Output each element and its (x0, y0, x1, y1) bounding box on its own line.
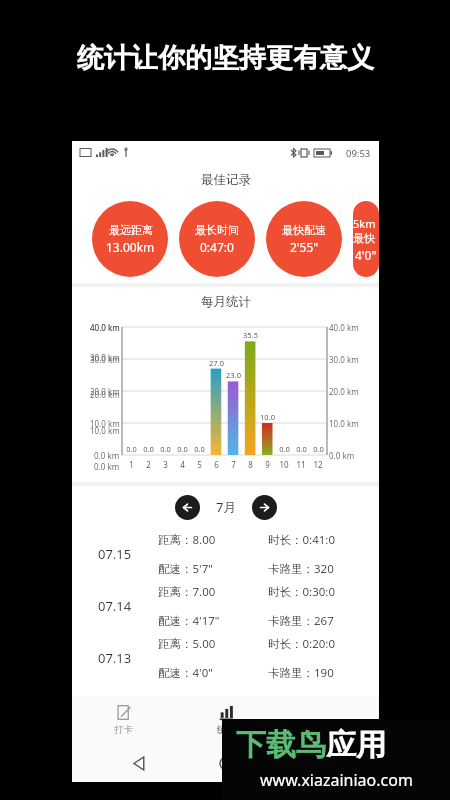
staticText: 10.0 (260, 412, 275, 422)
staticText: 0:47:0 (200, 239, 234, 255)
staticText: 7 (231, 459, 236, 470)
staticText: 10.0 km (90, 425, 120, 436)
staticText: 4'0" (355, 247, 377, 263)
staticText: 10.0 km (329, 418, 359, 429)
staticText: 配速：4'0" (158, 665, 213, 681)
staticText: 20.0 km (90, 389, 120, 400)
staticText: 0.0 (194, 444, 205, 454)
staticText: 距离：5.00 (158, 636, 216, 652)
staticText: 30.0 km (90, 354, 120, 365)
staticText: 10.0 km (90, 418, 120, 429)
staticText: 8 (248, 459, 253, 470)
staticText: 0.0 (143, 444, 154, 454)
button[interactable]: Recents (294, 746, 328, 780)
staticText: 27.0 (209, 358, 224, 368)
staticText: 20.0 km (90, 386, 120, 397)
staticText: 时长：0:30:0 (268, 584, 335, 600)
staticText: 每月统计 (201, 294, 251, 310)
staticText: 距离：8.00 (158, 532, 216, 548)
staticText: 1 (129, 459, 134, 470)
staticText: 30.0 km (329, 354, 359, 365)
staticText: 0.0 (126, 444, 137, 454)
staticText: 最快配速 (282, 223, 326, 237)
staticText: 最远距离 (109, 223, 153, 237)
staticText: 统计 (217, 724, 236, 736)
staticText: 12 (313, 459, 323, 470)
staticText: 下载鸟 (236, 726, 326, 764)
staticText: 11 (296, 459, 306, 470)
staticText: 7月 (216, 498, 237, 516)
button[interactable]: 打卡 (72, 696, 175, 744)
staticText: 卡路里：267 (268, 613, 334, 629)
staticText: 30.0 km (90, 352, 120, 363)
staticText: 4 (180, 459, 185, 470)
staticText: www.xiazainiao.com (260, 769, 413, 791)
staticText: 35.5 (243, 330, 258, 340)
button[interactable]: 07.15 (72, 528, 379, 580)
staticText: 0.0 (279, 444, 290, 454)
staticText: 配速：4'17" (158, 613, 220, 629)
button[interactable]: Back (123, 746, 157, 780)
staticText: 0.0 (296, 444, 307, 454)
staticText: 07.14 (98, 597, 132, 615)
staticText: 最佳记录 (201, 172, 251, 188)
staticText: 2 (146, 459, 151, 470)
button[interactable]: Previous month (175, 495, 200, 520)
button[interactable]: 统计 (175, 696, 277, 744)
staticText: 0.0 km (329, 450, 355, 461)
staticText: 5km最快 (353, 216, 379, 245)
staticText: 2'55" (290, 239, 319, 255)
button[interactable]: 5km最快 (353, 201, 379, 277)
staticText: 时长：0:41:0 (268, 532, 335, 548)
staticText: 0.0 (313, 444, 324, 454)
button[interactable]: Next month (252, 495, 277, 520)
staticText: 07.13 (98, 649, 132, 667)
staticText: 07.15 (98, 545, 132, 563)
staticText: 最长时间 (195, 223, 239, 237)
staticText: 0.0 (160, 444, 171, 454)
button[interactable]: Home (209, 746, 243, 780)
button[interactable]: 最长时间 (179, 201, 255, 277)
staticText: 20.0 km (329, 386, 359, 397)
staticText: 0.0 km (94, 461, 120, 472)
button[interactable]: 07.13 (72, 632, 379, 684)
staticText: 卡路里：320 (268, 561, 334, 577)
button[interactable]: 07.14 (72, 580, 379, 632)
staticText: 40.0 km (90, 322, 120, 333)
staticText: 40.0 km (90, 322, 120, 333)
staticText: 10 (279, 459, 289, 470)
staticText: 0.0 (177, 444, 188, 454)
staticText: 13.00km (106, 239, 155, 255)
staticText: 时长：0:20:0 (268, 636, 335, 652)
staticText: 配速：5'7" (158, 561, 213, 577)
staticText: 统计让你的坚持更有意义 (77, 41, 374, 75)
staticText: 5 (197, 459, 202, 470)
staticText: 9 (265, 459, 270, 470)
staticText: 距离：7.00 (158, 584, 216, 600)
button[interactable]: 最快配速 (266, 201, 342, 277)
staticText: 打卡 (114, 724, 133, 736)
staticText: 卡路里：190 (268, 665, 334, 681)
button[interactable]: 最远距离 (92, 201, 168, 277)
staticText: 应用 (326, 726, 386, 764)
staticText: 6 (214, 459, 219, 470)
staticText: 3 (163, 459, 168, 470)
staticText: 09:53 (346, 147, 371, 160)
staticText: 23.0 (226, 370, 241, 380)
staticText: 0.0 km (94, 450, 120, 461)
staticText: 40.0 km (329, 322, 359, 333)
